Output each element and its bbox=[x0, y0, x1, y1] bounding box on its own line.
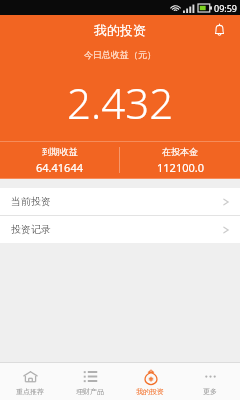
staticText: 重点推荐 bbox=[16, 387, 44, 396]
button[interactable]: 重点推荐 bbox=[0, 363, 60, 400]
staticText: 更多 bbox=[203, 387, 217, 396]
staticText: 112100.0 bbox=[157, 160, 204, 175]
button[interactable]: 当前投资 bbox=[0, 188, 240, 215]
staticText: 在投本金 bbox=[162, 146, 198, 157]
button[interactable]: 到期收益 bbox=[0, 146, 119, 175]
staticText: 09:59 bbox=[214, 2, 238, 14]
staticText: 投资记录 bbox=[11, 223, 51, 236]
button[interactable]: 在投本金 bbox=[120, 146, 240, 175]
staticText: 当前投资 bbox=[11, 195, 51, 208]
button[interactable]: 理财产品 bbox=[60, 363, 120, 400]
button[interactable]: 更多 bbox=[180, 363, 240, 400]
staticText: 64.41644 bbox=[36, 160, 83, 175]
staticText: 2.432 bbox=[67, 74, 174, 131]
staticText: 理财产品 bbox=[76, 387, 104, 396]
button[interactable]: 投资记录 bbox=[0, 216, 240, 243]
staticText: 我的投资 bbox=[94, 22, 146, 38]
button[interactable]: 我的投资 bbox=[120, 363, 180, 400]
button[interactable]: Notifications bbox=[206, 17, 232, 43]
staticText: 今日总收益（元） bbox=[84, 49, 156, 60]
staticText: 我的投资 bbox=[136, 387, 164, 396]
staticText: 到期收益 bbox=[42, 146, 78, 157]
